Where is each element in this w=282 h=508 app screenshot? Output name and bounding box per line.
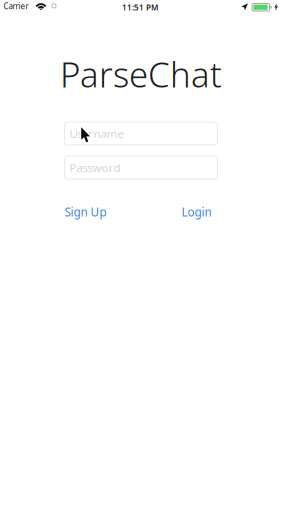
staticText: Password [69,160,120,175]
staticText: ParseChat [60,51,222,97]
staticText: Carrier [4,1,29,11]
staticText: Login [181,204,211,220]
button[interactable]: Sign Up [64,204,106,220]
button[interactable]: Login [181,204,211,220]
staticText: Username [69,126,123,141]
staticText: Sign Up [64,204,106,220]
staticText: 11:51 PM [122,2,158,13]
